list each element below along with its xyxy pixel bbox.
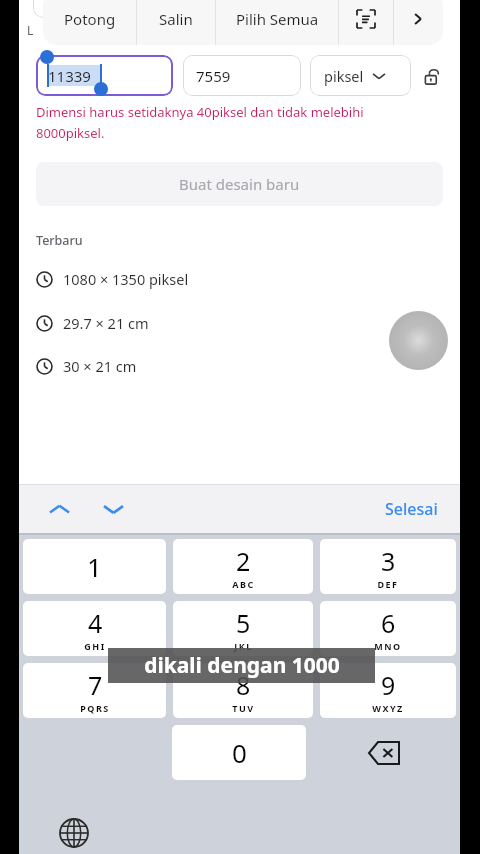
staticText: Selesai xyxy=(385,498,438,520)
button[interactable]: 6 xyxy=(320,601,456,656)
staticText: L xyxy=(27,22,34,38)
button[interactable]: Ganti bahasa xyxy=(51,811,97,854)
staticText: Buat desain baru xyxy=(179,174,300,194)
button[interactable]: 0 xyxy=(172,725,306,780)
staticText: 5 xyxy=(236,606,251,640)
button[interactable]: Berikutnya xyxy=(93,489,133,529)
staticText: MNO xyxy=(374,640,402,652)
staticText: Dimensi harus setidaknya 40piksel dan ti… xyxy=(36,103,364,121)
button[interactable]: Lainnya xyxy=(394,0,442,45)
staticText: PQRS xyxy=(80,702,110,714)
button[interactable]: 11339 xyxy=(36,55,173,96)
staticText: 30 × 21 cm xyxy=(63,356,137,376)
staticText: 3 xyxy=(381,544,396,578)
staticText: 1080 × 1350 piksel xyxy=(63,269,189,289)
staticText: 6 xyxy=(381,606,396,640)
staticText: ABC xyxy=(232,578,255,590)
staticText: 8 xyxy=(236,668,251,702)
staticText: Pilih Semua xyxy=(236,9,319,29)
staticText: 8000piksel. xyxy=(36,124,105,142)
staticText: piksel xyxy=(324,66,364,86)
staticText: Potong xyxy=(64,9,116,29)
button[interactable]: 1 xyxy=(23,539,166,594)
staticText: 0 xyxy=(232,735,247,770)
staticText: 9 xyxy=(381,668,396,702)
button[interactable]: piksel xyxy=(310,55,411,96)
staticText: 7559 xyxy=(196,66,231,86)
staticText: 29.7 × 21 cm xyxy=(63,313,149,333)
button[interactable]: Kunci rasio aspek xyxy=(415,60,447,92)
button[interactable]: Selesai xyxy=(385,498,438,520)
staticText: dikali dengan 1000 xyxy=(144,651,340,680)
button[interactable]: Hapus xyxy=(344,724,424,781)
staticText: DEF xyxy=(377,578,399,590)
button[interactable]: Pilih Semua xyxy=(216,0,338,45)
button[interactable]: Terjemahkan xyxy=(339,0,393,45)
button[interactable]: 5 xyxy=(173,601,313,656)
button[interactable]: 2 xyxy=(173,539,313,594)
button[interactable]: Potong xyxy=(43,0,136,45)
staticText: 11339 xyxy=(48,66,91,86)
staticText: 1 xyxy=(87,549,102,584)
button[interactable]: 9 xyxy=(320,663,456,718)
button[interactable]: 8 xyxy=(173,663,313,718)
staticText: 4 xyxy=(88,606,103,640)
staticText: Terbaru xyxy=(36,232,83,249)
staticText: 2 xyxy=(236,544,251,578)
button[interactable]: Salin xyxy=(137,0,215,45)
button[interactable]: 7559 xyxy=(183,55,301,96)
button[interactable]: 7 xyxy=(23,663,166,718)
staticText: JKL xyxy=(234,640,253,652)
staticText: TUV xyxy=(232,702,255,714)
button[interactable]: 30 × 21 cm xyxy=(36,353,345,379)
staticText: Salin xyxy=(159,9,193,29)
button[interactable]: Sebelumnya xyxy=(39,489,79,529)
staticText: 7 xyxy=(88,668,103,702)
button[interactable]: 3 xyxy=(320,539,456,594)
button[interactable]: 4 xyxy=(23,601,166,656)
staticText: WXYZ xyxy=(372,702,404,714)
staticText: GHI xyxy=(84,640,106,652)
button[interactable]: 29.7 × 21 cm xyxy=(36,310,345,336)
button[interactable]: Buat desain baru xyxy=(36,162,443,206)
button[interactable]: 1080 × 1350 piksel xyxy=(36,266,345,292)
